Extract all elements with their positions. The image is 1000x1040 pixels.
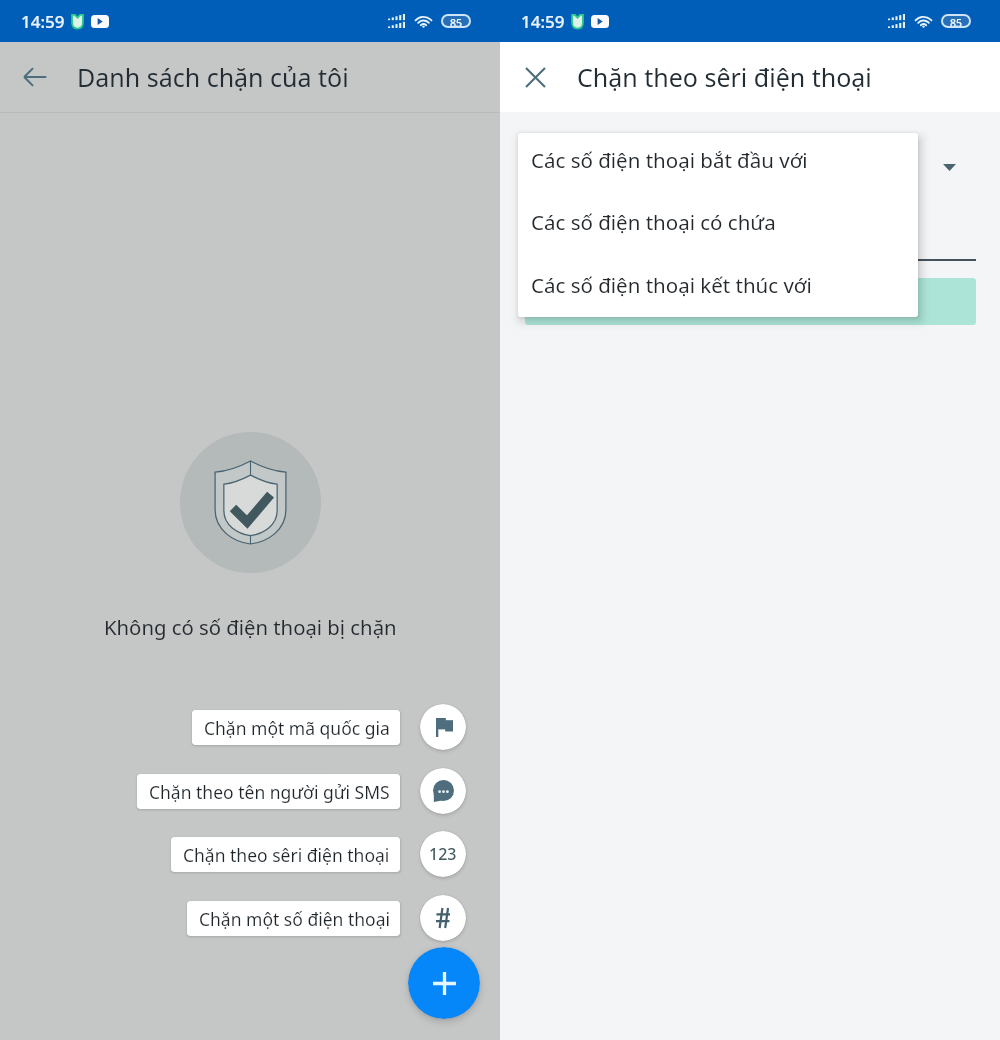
staticText: Không có số điện thoại bị chặn [104,613,397,641]
button[interactable]: Các số điện thoại bắt đầu với [518,133,918,186]
button[interactable]: Chặn một số điện thoại [187,901,400,936]
button[interactable]: Chặn theo sêri điện thoại [420,831,466,877]
button[interactable]: Các số điện thoại kết thúc với [518,254,918,316]
button[interactable]: Chặn theo tên người gửi SMS [137,774,400,809]
staticText: Các số điện thoại bắt đầu với [531,146,808,174]
button[interactable]: Chặn [525,278,976,325]
button[interactable]: Chặn một số điện thoại [420,895,466,941]
button[interactable]: Các số điện thoại có chứa [518,191,918,253]
button[interactable]: Chặn một mã quốc gia [420,704,466,750]
button[interactable]: Chọn kiểu chặn [525,140,976,261]
staticText: Chặn theo sêri điện thoại [183,843,390,867]
button[interactable]: Chặn theo sêri điện thoại [171,837,400,872]
staticText: Chặn một mã quốc gia [204,716,390,740]
staticText: 85 [450,16,463,26]
staticText: Các số điện thoại có chứa [531,208,776,236]
staticText: 123 [429,843,457,865]
button[interactable]: Close [507,49,563,105]
staticText: 14:59 [521,10,565,33]
staticText: Chặn một số điện thoại [199,907,390,931]
staticText: Chặn theo tên người gửi SMS [149,780,390,804]
staticText: 85 [950,16,963,26]
staticText: Các số điện thoại kết thúc với [531,271,812,299]
button[interactable]: Add [408,947,480,1019]
button[interactable]: Back [7,49,63,105]
staticText: Chặn theo sêri điện thoại [577,60,872,94]
button[interactable]: Chặn theo tên người gửi SMS [420,768,466,814]
staticText: 14:59 [21,10,65,33]
button[interactable]: Chặn một mã quốc gia [192,710,400,745]
staticText: Danh sách chặn của tôi [77,60,349,94]
